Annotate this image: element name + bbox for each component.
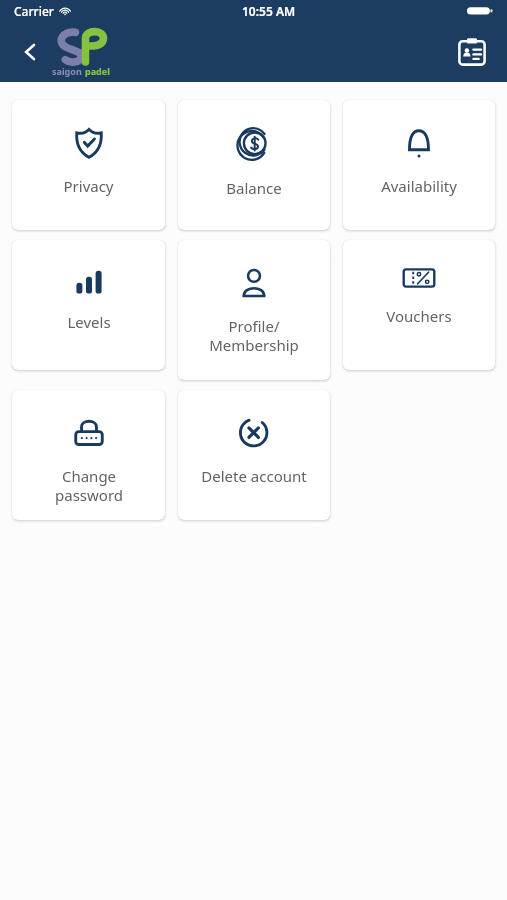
staticText: 10:55 AM bbox=[242, 3, 296, 19]
staticText: Carrier bbox=[14, 3, 54, 19]
button[interactable]: Availability bbox=[343, 100, 495, 230]
staticText: Balance bbox=[226, 178, 282, 198]
staticText: Profile/ Membership bbox=[209, 316, 299, 355]
staticText: padel bbox=[85, 65, 110, 77]
button[interactable]: Back bbox=[8, 30, 52, 74]
staticText: Levels bbox=[67, 312, 111, 332]
button[interactable]: Delete account bbox=[178, 390, 330, 520]
button[interactable]: Balance bbox=[178, 100, 330, 230]
button[interactable]: Levels bbox=[12, 240, 165, 370]
button[interactable]: Change password bbox=[12, 390, 165, 520]
staticText: Change password bbox=[55, 466, 123, 505]
staticText: Delete account bbox=[201, 466, 307, 486]
button[interactable]: Vouchers bbox=[343, 240, 495, 370]
button[interactable]: Membership card bbox=[449, 29, 495, 75]
staticText: Vouchers bbox=[386, 306, 452, 326]
staticText: saigon bbox=[52, 65, 85, 77]
button[interactable]: Profile/ Membership bbox=[178, 240, 330, 380]
button[interactable]: Privacy bbox=[12, 100, 165, 230]
staticText: Privacy bbox=[63, 176, 114, 196]
staticText: Availability bbox=[381, 176, 457, 196]
